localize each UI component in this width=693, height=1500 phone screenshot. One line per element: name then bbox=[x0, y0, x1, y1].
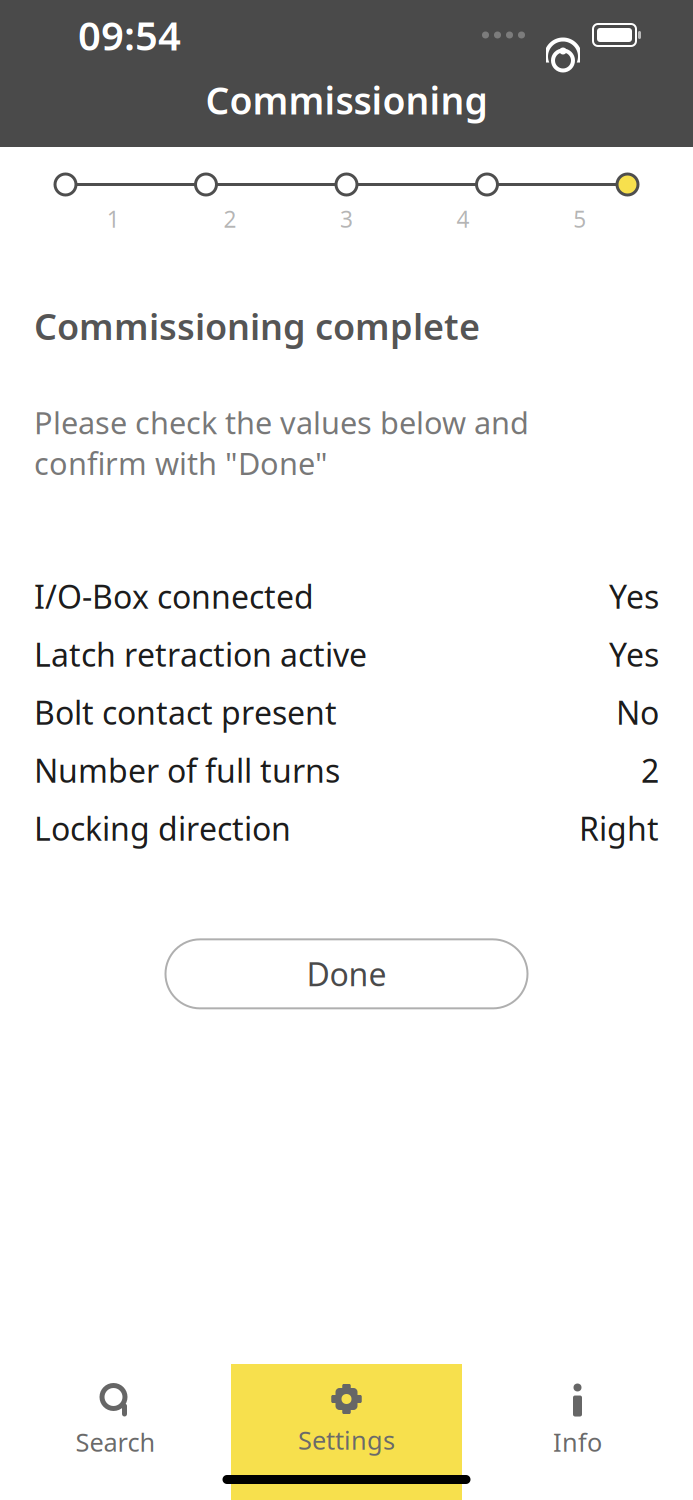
staticText: Commissioning bbox=[205, 75, 487, 125]
staticText: I/O-Box connected bbox=[34, 575, 314, 618]
staticText: 3 bbox=[340, 204, 353, 234]
button[interactable]: Settings bbox=[231, 1364, 462, 1500]
staticText: Right bbox=[579, 807, 659, 850]
staticText: No bbox=[616, 691, 659, 734]
staticText: Commissioning complete bbox=[34, 302, 480, 350]
staticText: Info bbox=[553, 1425, 602, 1459]
staticText: 4 bbox=[457, 204, 470, 234]
staticText: Settings bbox=[298, 1423, 395, 1457]
button[interactable]: Done bbox=[165, 939, 527, 1008]
staticText: Latch retraction active bbox=[34, 633, 367, 676]
staticText: 5 bbox=[573, 204, 586, 234]
staticText: Yes bbox=[609, 633, 659, 676]
staticText: Yes bbox=[609, 575, 659, 618]
button[interactable]: Search bbox=[0, 1364, 231, 1500]
staticText: 09:54 bbox=[78, 8, 181, 61]
staticText: Done bbox=[306, 953, 386, 995]
staticText: Bolt contact present bbox=[34, 691, 337, 734]
staticText: Please check the values below and confir… bbox=[34, 402, 529, 483]
button[interactable]: Info bbox=[462, 1364, 693, 1500]
staticText: 1 bbox=[107, 204, 120, 234]
staticText: 2 bbox=[223, 204, 236, 234]
staticText: Search bbox=[75, 1425, 155, 1459]
staticText: Number of full turns bbox=[34, 749, 340, 792]
staticText: 2 bbox=[641, 749, 659, 792]
staticText: Locking direction bbox=[34, 807, 291, 850]
